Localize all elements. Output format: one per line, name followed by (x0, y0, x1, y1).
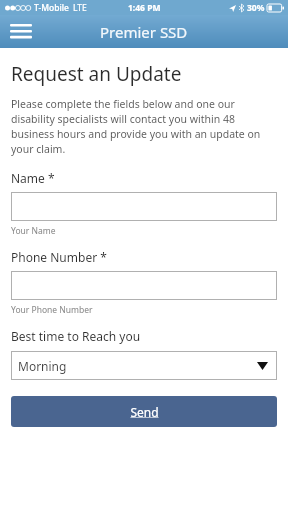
staticText: Please complete the fields below and one… (11, 97, 277, 156)
button[interactable]: Open navigation menu (6, 18, 36, 46)
button[interactable]: Morning (11, 351, 277, 380)
staticText: Your Phone Number (11, 304, 93, 316)
staticText: Name * (11, 170, 55, 186)
button[interactable]: Your Phone Number (11, 271, 277, 300)
button[interactable]: Your Name (11, 192, 277, 221)
staticText: Best time to Reach you (11, 328, 141, 344)
button[interactable]: Send (11, 396, 277, 427)
staticText: Morning (18, 358, 67, 374)
staticText: Your Name (11, 225, 56, 237)
staticText: 1:46 PM (128, 2, 161, 14)
staticText: Premier SSD (100, 22, 188, 42)
staticText: LTE (73, 2, 87, 14)
staticText: T-Mobile (34, 2, 69, 14)
staticText: Phone Number * (11, 249, 107, 265)
staticText: Send (130, 404, 159, 420)
staticText: Request an Update (11, 61, 182, 87)
staticText: 30% (247, 2, 265, 14)
